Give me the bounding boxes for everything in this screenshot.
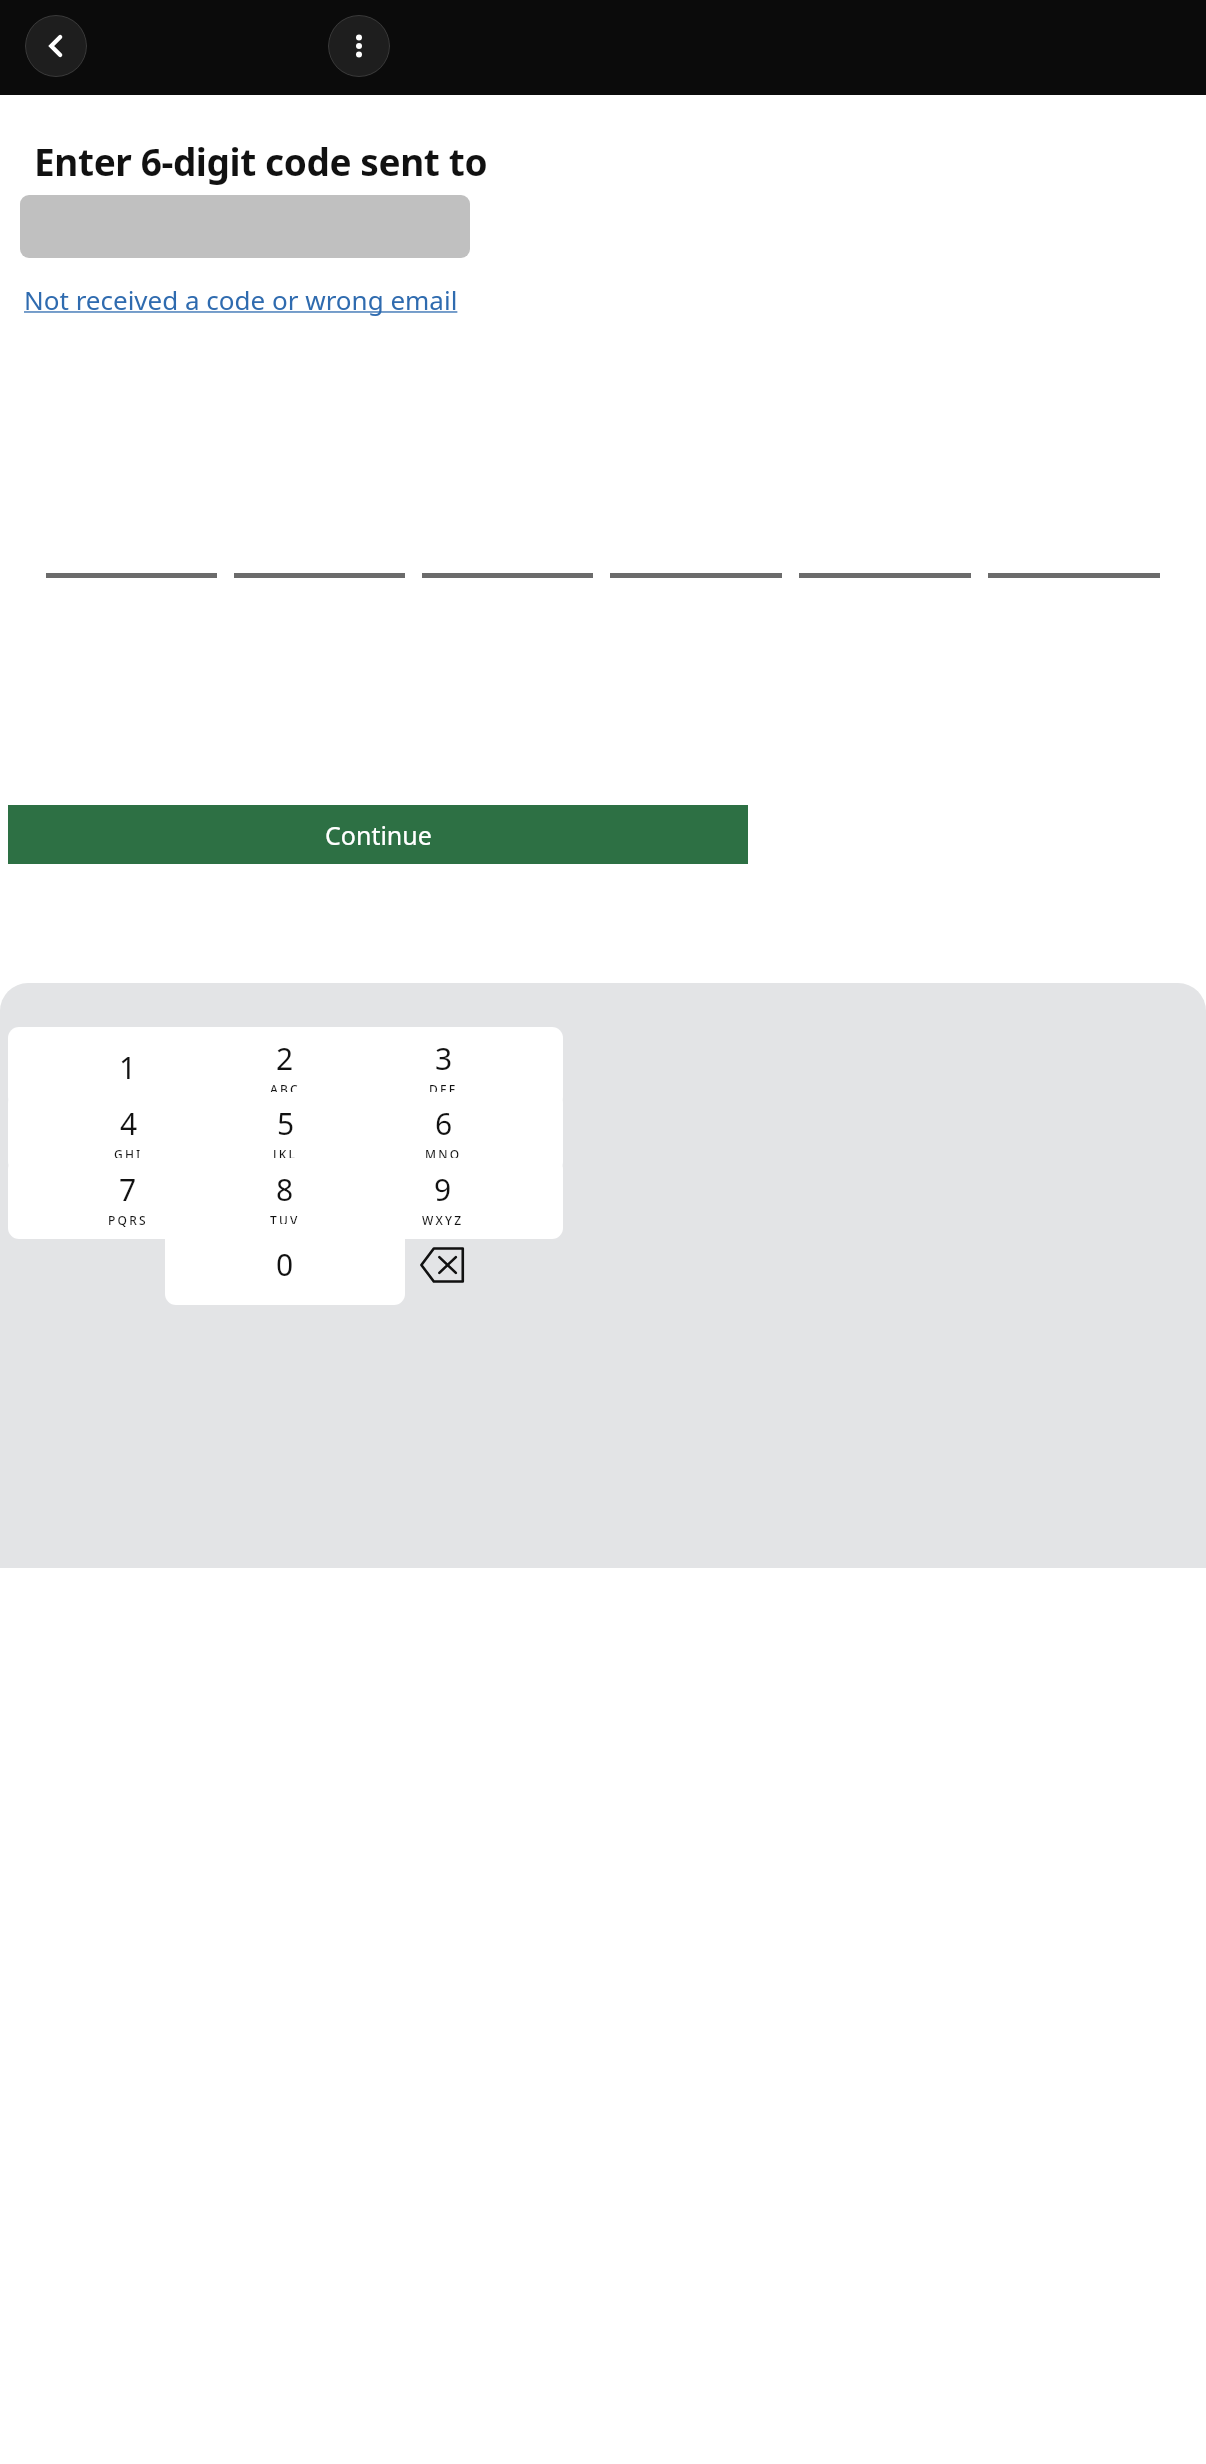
button[interactable]: More options bbox=[328, 15, 390, 77]
staticText: 6 bbox=[435, 1103, 453, 1144]
staticText: Continue bbox=[325, 818, 432, 852]
staticText: ABC bbox=[270, 1081, 300, 1097]
staticText: 7 bbox=[119, 1169, 137, 1210]
staticText: 9 bbox=[434, 1169, 452, 1210]
button[interactable]: 0 bbox=[165, 1224, 405, 1305]
staticText: 1 bbox=[119, 1047, 137, 1088]
button[interactable]: Continue bbox=[8, 805, 748, 864]
staticText: TUV bbox=[270, 1212, 300, 1228]
button[interactable]: 9 bbox=[323, 1158, 563, 1239]
staticText: WXYZ bbox=[422, 1212, 464, 1228]
staticText: PQRS bbox=[108, 1212, 148, 1228]
staticText: 4 bbox=[120, 1103, 138, 1144]
staticText: 8 bbox=[276, 1169, 294, 1210]
button[interactable]: 8 bbox=[165, 1158, 405, 1239]
button[interactable]: Not received a code or wrong email bbox=[24, 278, 458, 321]
button[interactable]: 3 bbox=[323, 1027, 563, 1108]
staticText: 5 bbox=[277, 1103, 295, 1144]
staticText: GHI bbox=[114, 1146, 143, 1162]
button[interactable]: 4 bbox=[8, 1092, 248, 1173]
staticText: 3 bbox=[435, 1038, 453, 1079]
staticText: MNO bbox=[425, 1146, 462, 1162]
button[interactable]: 2 bbox=[165, 1027, 405, 1108]
button[interactable]: 7 bbox=[8, 1158, 248, 1239]
button[interactable]: 5 bbox=[165, 1092, 405, 1173]
button[interactable]: Back bbox=[25, 15, 87, 77]
button[interactable]: 1 bbox=[8, 1027, 248, 1108]
button[interactable]: 6 bbox=[323, 1092, 563, 1173]
staticText: 0 bbox=[276, 1244, 294, 1285]
button[interactable]: Backspace bbox=[323, 1224, 563, 1305]
staticText: Not received a code or wrong email bbox=[24, 282, 458, 317]
staticText: JKL bbox=[273, 1146, 298, 1162]
staticText: Enter 6-digit code sent to bbox=[34, 136, 488, 186]
staticText: DEF bbox=[429, 1081, 458, 1097]
staticText: 2 bbox=[276, 1038, 294, 1079]
